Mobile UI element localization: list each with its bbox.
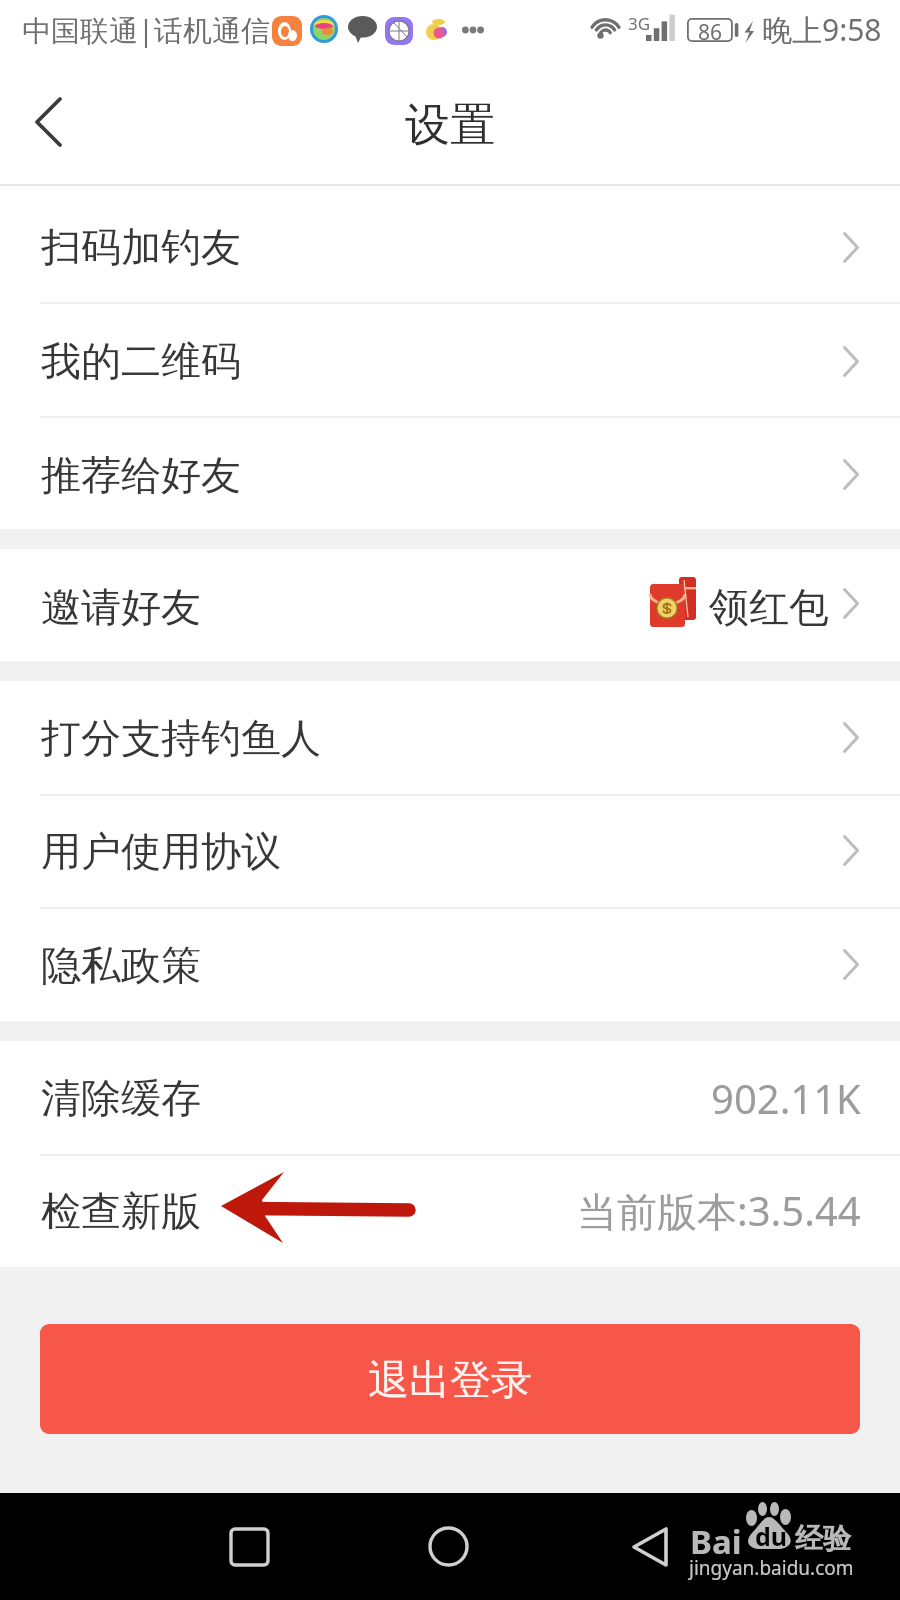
staticText: 打分支持钓鱼人 [41,713,321,763]
button[interactable]: 退出登录 [40,1324,860,1434]
staticText: 902.11K [711,1071,861,1125]
staticText: du [755,1519,788,1553]
staticText: 设置 [0,97,900,154]
button[interactable]: 打分支持钓鱼人 [0,681,900,794]
button[interactable]: 用户使用协议 [0,794,900,907]
staticText: 用户使用协议 [41,826,281,876]
staticText: 中国联通|话机通信 [22,10,270,50]
button[interactable]: Back [580,1493,720,1600]
button[interactable]: 检查新版 [0,1154,900,1267]
button[interactable]: 推荐给好友 [0,418,900,531]
button[interactable]: Home [378,1493,518,1600]
button[interactable]: 我的二维码 [0,304,900,418]
button[interactable]: Back [0,60,96,184]
button[interactable]: 邀请好友 [0,550,900,662]
button[interactable]: Recents [179,1493,319,1600]
staticText: jingyan.baidu.com [689,1555,854,1581]
staticText: 领红包 [709,582,829,632]
button[interactable]: 扫码加钓友 [0,190,900,304]
staticText: 推荐给好友 [41,450,241,500]
staticText: 经验 [795,1521,851,1556]
staticText: 邀请好友 [41,582,201,632]
staticText: 扫码加钓友 [41,222,241,272]
staticText: 当前版本:3.5.44 [577,1183,861,1238]
button[interactable]: 隐私政策 [0,908,900,1021]
button[interactable]: 清除缓存 [0,1041,900,1154]
staticText: 清除缓存 [41,1073,201,1123]
staticText: 86 [698,18,723,42]
staticText: 3G [628,12,651,35]
staticText: 退出登录 [368,1355,532,1407]
staticText: 检查新版 [41,1186,201,1236]
staticText: 隐私政策 [41,940,201,990]
staticText: 我的二维码 [41,336,241,386]
staticText: Bai [690,1519,742,1564]
staticText: 晚上9:58 [762,9,882,50]
